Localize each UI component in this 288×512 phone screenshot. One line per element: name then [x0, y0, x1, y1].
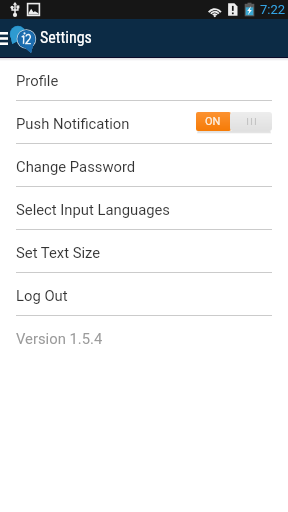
- button[interactable]: Push Notification: [0, 101, 288, 143]
- button[interactable]: Open navigation menu: [0, 19, 9, 57]
- button[interactable]: Profile: [0, 58, 288, 100]
- staticText: Version 1.5.4: [16, 330, 103, 347]
- staticText: 7:22: [260, 2, 286, 17]
- button[interactable]: Log Out: [0, 273, 288, 315]
- staticText: Set Text Size: [16, 244, 101, 261]
- staticText: Push Notification: [16, 115, 130, 132]
- staticText: Select Input Languages: [16, 201, 171, 218]
- staticText: Log Out: [16, 287, 68, 304]
- staticText: Profile: [16, 72, 59, 89]
- button[interactable]: Set Text Size: [0, 230, 288, 272]
- staticText: Change Password: [16, 158, 136, 175]
- button[interactable]: Push notification, on: [196, 111, 272, 134]
- button[interactable]: Change Password: [0, 144, 288, 186]
- button[interactable]: Select Input Languages: [0, 187, 288, 229]
- staticText: Settings: [40, 28, 92, 47]
- staticText: ON: [205, 115, 221, 128]
